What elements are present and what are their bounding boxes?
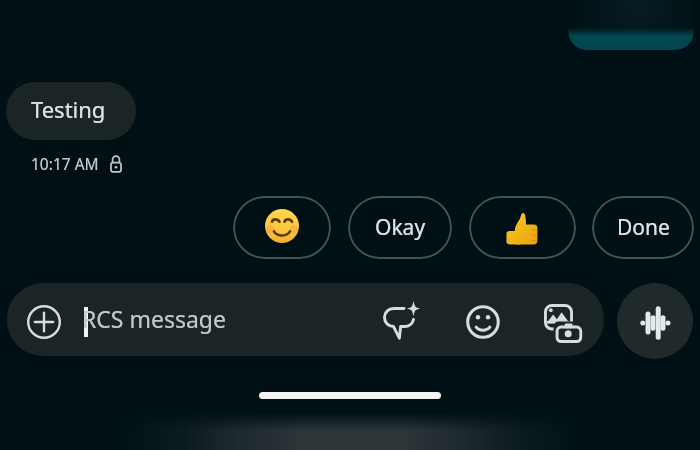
button[interactable]: Emoji (459, 298, 507, 346)
staticText: RCS message (82, 303, 226, 334)
staticText: 10:17 AM (31, 153, 99, 174)
button[interactable]: Magic Compose (376, 296, 426, 346)
button[interactable]: Okay (348, 196, 452, 259)
button[interactable] (233, 196, 331, 259)
button[interactable]: Testing (6, 82, 136, 140)
button[interactable] (469, 196, 576, 259)
staticText: Testing (31, 94, 106, 124)
button[interactable]: Record voice message (617, 283, 693, 359)
button[interactable]: Done (592, 196, 694, 259)
staticText: Done (617, 213, 670, 242)
button[interactable]: Gallery (538, 296, 590, 348)
staticText: Okay (375, 213, 426, 242)
button[interactable]: Attach (25, 303, 63, 341)
